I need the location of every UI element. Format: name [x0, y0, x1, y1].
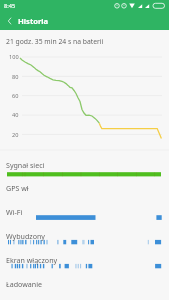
staticText: Wybudzony	[6, 231, 45, 241]
button[interactable]: Sygnał sieci	[0, 160, 169, 184]
staticText: 20	[12, 131, 19, 139]
button[interactable]: Wybudzony	[0, 231, 169, 255]
staticText: 21 godz. 35 min 24 s na baterii	[6, 37, 104, 46]
staticText: Sygnał sieci	[6, 160, 45, 170]
staticText: 40	[12, 111, 19, 119]
staticText: Historia	[18, 16, 49, 26]
button[interactable]: Back	[0, 12, 18, 30]
staticText: Wi-Fi	[6, 207, 23, 217]
button[interactable]: Ładowanie	[0, 279, 169, 300]
staticText: Ładowanie	[6, 279, 42, 289]
staticText: 100	[9, 53, 19, 61]
staticText: 80	[12, 73, 19, 81]
button[interactable]: Ekran włączony	[0, 255, 169, 279]
button[interactable]: Wi-Fi	[0, 207, 169, 231]
button[interactable]: GPS wł	[0, 183, 169, 207]
staticText: 60	[12, 92, 19, 100]
staticText: 8:45	[4, 2, 16, 10]
staticText: GPS wł	[6, 183, 29, 193]
staticText: Ekran włączony	[6, 255, 58, 265]
